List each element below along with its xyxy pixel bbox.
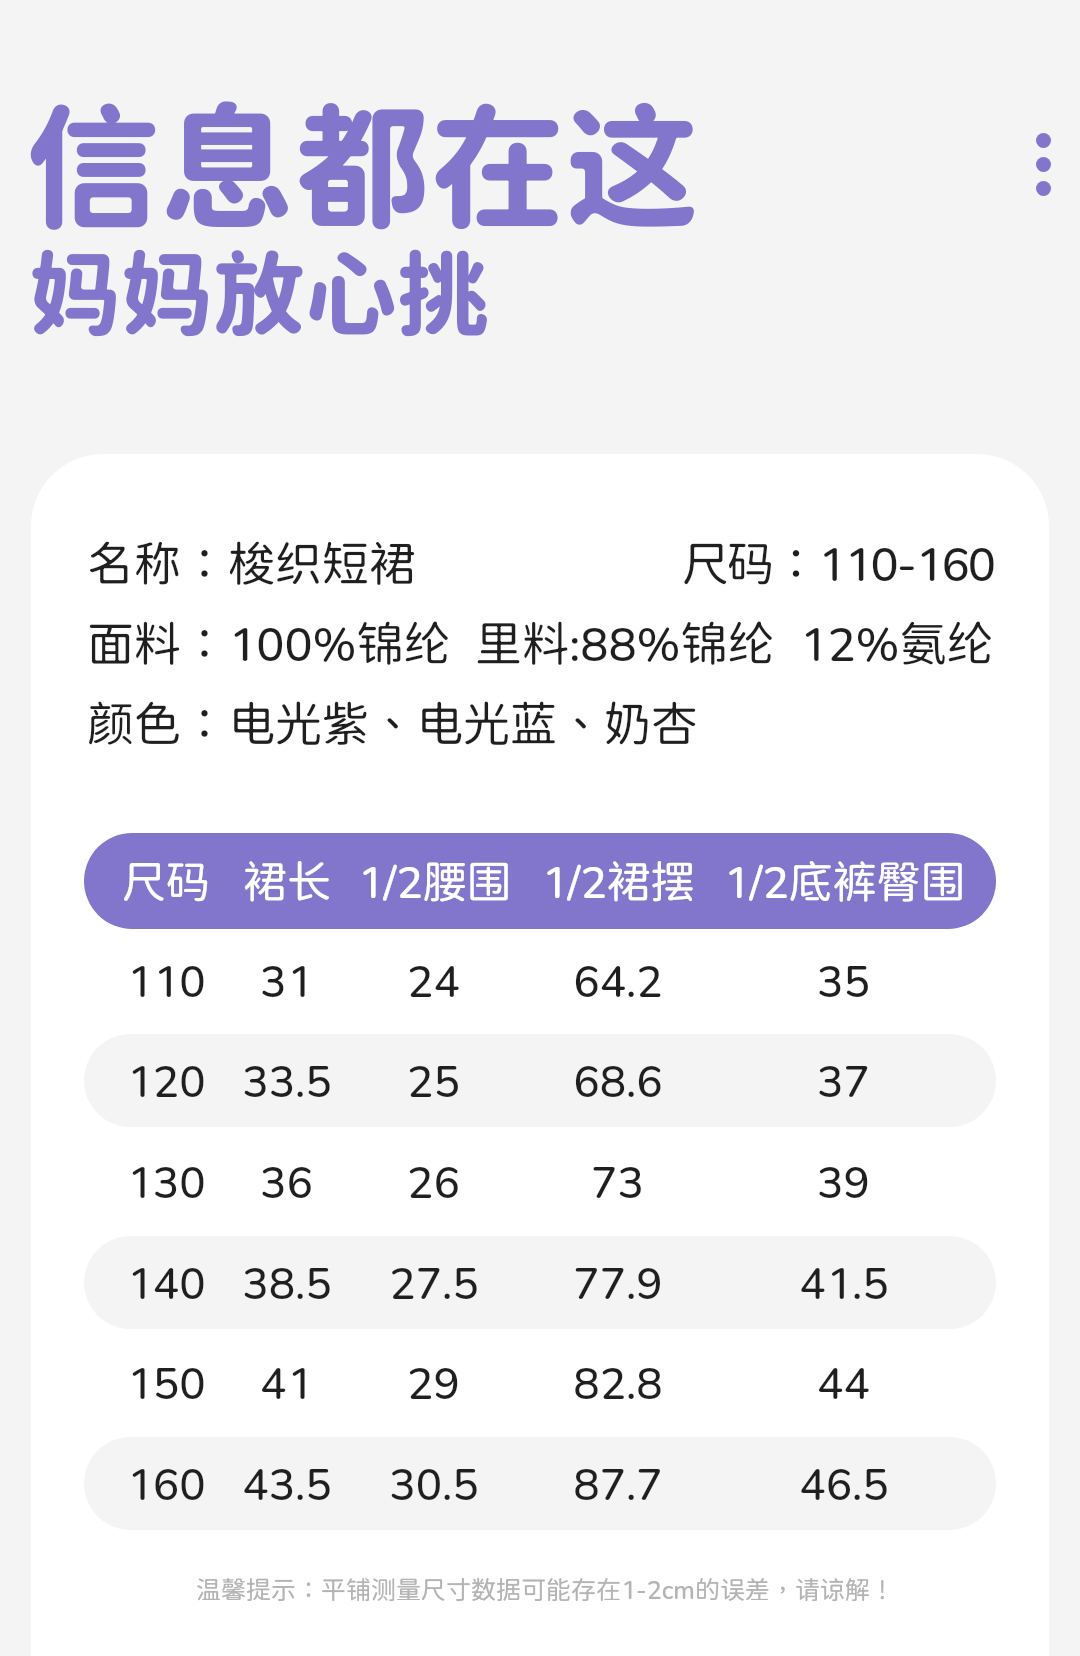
staticText: 面料：100%锦纶 里料:88%锦纶 12%氨纶 xyxy=(87,615,994,670)
staticText: 43.5 xyxy=(242,1457,332,1509)
button[interactable]: More options xyxy=(1008,106,1078,222)
staticText: 130 xyxy=(126,1155,206,1207)
staticText: 120 xyxy=(126,1054,206,1106)
staticText: 35 xyxy=(817,954,870,1006)
staticText: 41.5 xyxy=(799,1256,889,1308)
button[interactable]: 120 xyxy=(84,1030,996,1130)
staticText: 温馨提示：平铺测量尺寸数据可能存在1-2cm的误差，请谅解！ xyxy=(196,1575,895,1605)
staticText: 44 xyxy=(817,1356,870,1408)
staticText: 29 xyxy=(407,1356,460,1408)
staticText: 25 xyxy=(407,1054,460,1106)
staticText: 150 xyxy=(126,1356,206,1408)
staticText: 160 xyxy=(126,1457,206,1509)
staticText: 73 xyxy=(591,1155,644,1207)
staticText: 31 xyxy=(260,954,313,1006)
staticText: 妈妈放心挑 xyxy=(29,239,490,348)
staticText: 110 xyxy=(126,954,206,1006)
staticText: 46.5 xyxy=(799,1457,889,1509)
staticText: 1/2底裤臀围 xyxy=(723,855,965,907)
staticText: 77.9 xyxy=(573,1256,663,1308)
staticText: 颜色：电光紫、电光蓝、奶杏 xyxy=(87,695,698,750)
staticText: 信息都在这 xyxy=(25,86,700,245)
staticText: 37 xyxy=(817,1054,870,1106)
button[interactable]: 110 xyxy=(84,930,996,1030)
button[interactable]: 140 xyxy=(84,1232,996,1332)
staticText: 裙长 xyxy=(243,855,331,907)
staticText: 26 xyxy=(407,1155,460,1207)
staticText: 27.5 xyxy=(389,1256,479,1308)
staticText: 39 xyxy=(817,1155,870,1207)
staticText: 82.8 xyxy=(573,1356,663,1408)
button[interactable]: 130 xyxy=(84,1131,996,1231)
button[interactable]: 150 xyxy=(84,1332,996,1432)
staticText: 1/2裙摆 xyxy=(541,855,695,907)
button[interactable]: 尺码 xyxy=(84,833,996,929)
staticText: 33.5 xyxy=(242,1054,332,1106)
staticText: 1/2腰围 xyxy=(357,855,511,907)
staticText: 尺码 xyxy=(122,855,210,907)
staticText: 30.5 xyxy=(389,1457,479,1509)
staticText: 64.2 xyxy=(573,954,663,1006)
staticText: 87.7 xyxy=(573,1457,663,1509)
staticText: 38.5 xyxy=(242,1256,332,1308)
staticText: 36 xyxy=(260,1155,313,1207)
staticText: 41 xyxy=(260,1356,313,1408)
button[interactable]: 160 xyxy=(84,1433,996,1533)
staticText: 140 xyxy=(126,1256,206,1308)
staticText: 名称：梭织短裙 xyxy=(87,535,416,590)
staticText: 24 xyxy=(407,954,460,1006)
staticText: 尺码：110-160 xyxy=(682,535,995,590)
staticText: 68.6 xyxy=(573,1054,663,1106)
